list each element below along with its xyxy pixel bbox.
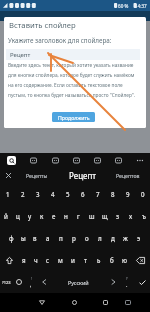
staticText: ъ bbox=[142, 212, 146, 220]
button[interactable]: з bbox=[111, 205, 124, 227]
button[interactable]: 5 bbox=[60, 183, 75, 205]
staticText: Рецептов bbox=[116, 172, 140, 179]
button[interactable]: Рецептов bbox=[105, 168, 150, 183]
staticText: . bbox=[126, 281, 128, 288]
button[interactable]: 1 bbox=[0, 183, 15, 205]
button[interactable]: 0 bbox=[135, 183, 150, 205]
button[interactable]: ш bbox=[85, 205, 98, 227]
staticText: 8 bbox=[111, 190, 115, 198]
button[interactable]: Русский bbox=[51, 271, 106, 293]
button[interactable]: й bbox=[0, 205, 12, 227]
button[interactable]: Продолжить bbox=[52, 112, 95, 122]
button[interactable]: Search bbox=[0, 153, 22, 168]
button[interactable]: п bbox=[54, 227, 67, 249]
staticText: й bbox=[4, 212, 8, 220]
button[interactable]: Enter bbox=[134, 271, 150, 293]
staticText: в bbox=[33, 234, 37, 242]
button[interactable]: More bbox=[129, 153, 150, 168]
button[interactable]: б bbox=[105, 249, 118, 271]
button[interactable]: Back bbox=[35, 293, 49, 312]
button[interactable]: щ bbox=[98, 205, 111, 227]
button[interactable]: Hide keyboard bbox=[121, 293, 135, 312]
staticText: ч bbox=[34, 256, 38, 264]
button[interactable]: GIF bbox=[22, 153, 44, 168]
button[interactable]: ю bbox=[118, 249, 131, 271]
button[interactable]: у bbox=[24, 205, 36, 227]
button[interactable]: ? bbox=[120, 271, 134, 293]
staticText: у bbox=[28, 212, 32, 220]
button[interactable]: н bbox=[60, 205, 72, 227]
staticText: о bbox=[85, 234, 89, 242]
staticText: м bbox=[58, 256, 63, 264]
button[interactable]: л bbox=[93, 227, 106, 249]
button[interactable]: ь bbox=[92, 249, 105, 271]
button[interactable]: м bbox=[54, 249, 66, 271]
staticText: Рецепт bbox=[69, 170, 97, 181]
button[interactable]: Рецепты bbox=[14, 168, 60, 183]
button[interactable]: Next language bbox=[106, 271, 120, 293]
button[interactable]: р bbox=[67, 227, 80, 249]
staticText: з bbox=[116, 212, 120, 220]
staticText: 5 bbox=[66, 190, 70, 198]
button[interactable]: 3 bbox=[30, 183, 45, 205]
staticText: 4 bbox=[51, 190, 55, 198]
button[interactable]: в bbox=[29, 227, 41, 249]
button[interactable]: д bbox=[106, 227, 119, 249]
button[interactable]: ъ bbox=[137, 205, 150, 227]
staticText: н bbox=[64, 212, 68, 220]
button[interactable]: о bbox=[80, 227, 93, 249]
button[interactable]: Рецепт bbox=[60, 168, 105, 183]
button[interactable]: Shift bbox=[0, 249, 18, 271]
button[interactable]: т bbox=[79, 249, 92, 271]
button[interactable]: Backspace bbox=[131, 249, 150, 271]
button[interactable]: я bbox=[18, 249, 30, 271]
staticText: ! bbox=[31, 276, 32, 281]
button[interactable]: Stickers bbox=[44, 153, 66, 168]
button[interactable]: ф bbox=[5, 227, 17, 249]
button[interactable]: Clipboard bbox=[66, 153, 87, 168]
button[interactable]: и bbox=[66, 249, 79, 271]
button[interactable]: Emoji bbox=[13, 271, 25, 293]
button[interactable]: Settings bbox=[108, 153, 129, 168]
staticText: 1 bbox=[6, 190, 10, 198]
button[interactable]: Recent apps bbox=[98, 293, 112, 312]
button[interactable]: ц bbox=[12, 205, 24, 227]
button[interactable]: ж bbox=[119, 227, 132, 249]
staticText: 9 bbox=[126, 190, 130, 198]
staticText: Вставить спойлер bbox=[9, 20, 76, 30]
staticText: и bbox=[71, 256, 75, 264]
staticText: 3 bbox=[36, 190, 40, 198]
button[interactable]: с bbox=[42, 249, 54, 271]
button[interactable]: э bbox=[132, 227, 145, 249]
staticText: л bbox=[98, 234, 102, 242]
button[interactable]: х bbox=[124, 205, 137, 227]
button[interactable]: 7 bbox=[90, 183, 105, 205]
button[interactable]: 8 bbox=[105, 183, 120, 205]
button[interactable]: е bbox=[48, 205, 60, 227]
staticText: 0 bbox=[141, 190, 145, 198]
button[interactable]: ы bbox=[17, 227, 29, 249]
staticText: ю bbox=[122, 256, 127, 264]
staticText: х bbox=[129, 212, 133, 220]
button[interactable]: к bbox=[36, 205, 48, 227]
button[interactable]: Previous language bbox=[37, 271, 51, 293]
button[interactable]: ! bbox=[25, 271, 37, 293]
button[interactable]: г bbox=[72, 205, 85, 227]
button[interactable]: 2 bbox=[15, 183, 30, 205]
staticText: Рецепты bbox=[26, 172, 48, 179]
button[interactable]: Home bbox=[67, 293, 81, 312]
staticText: Русский bbox=[68, 279, 89, 286]
button[interactable]: Translate bbox=[87, 153, 108, 168]
button[interactable]: а bbox=[41, 227, 54, 249]
staticText: 2 bbox=[21, 190, 25, 198]
button[interactable]: ч bbox=[30, 249, 42, 271]
button[interactable]: ?123 bbox=[0, 271, 13, 293]
button[interactable]: 6 bbox=[75, 183, 90, 205]
button[interactable]: 9 bbox=[120, 183, 135, 205]
button[interactable]: Рецепт bbox=[6, 49, 140, 60]
staticText: г bbox=[77, 212, 80, 220]
button[interactable]: 4 bbox=[45, 183, 60, 205]
staticText: ы bbox=[21, 234, 26, 242]
staticText: я bbox=[22, 256, 26, 264]
button[interactable]: Close suggestions bbox=[1, 168, 15, 183]
